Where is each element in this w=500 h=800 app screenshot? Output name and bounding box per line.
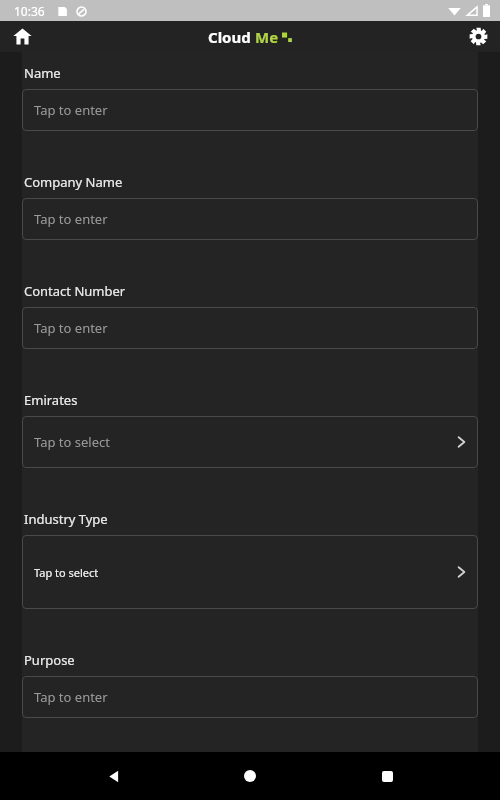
staticText: 10:36 [14, 3, 45, 19]
staticText: Cloud [208, 27, 251, 47]
staticText: Tap to select [34, 565, 457, 580]
button[interactable]: Tap to select [22, 416, 478, 468]
staticText: Industry Type [24, 510, 108, 528]
staticText: Tap to enter [34, 319, 108, 337]
button[interactable]: Tap to select [22, 535, 478, 609]
button[interactable]: Back [91, 753, 137, 799]
button[interactable]: Home [227, 753, 273, 799]
staticText: Purpose [24, 651, 75, 669]
button[interactable]: Settings [456, 21, 500, 52]
staticText: Tap to enter [34, 101, 108, 119]
staticText: Tap to select [34, 433, 457, 451]
button[interactable]: Tap to enter [22, 198, 478, 240]
button[interactable]: Recent apps [364, 753, 410, 799]
staticText: Me [255, 27, 279, 47]
button[interactable]: Tap to enter [22, 89, 478, 131]
button[interactable]: Home [0, 21, 44, 52]
staticText: Emirates [24, 391, 78, 409]
staticText: Tap to enter [34, 688, 108, 706]
button[interactable]: Tap to enter [22, 676, 478, 718]
staticText: Contact Number [24, 282, 126, 300]
staticText: Tap to enter [34, 210, 108, 228]
button[interactable]: Tap to enter [22, 307, 478, 349]
staticText: Name [24, 64, 61, 82]
staticText: Company Name [24, 173, 123, 191]
